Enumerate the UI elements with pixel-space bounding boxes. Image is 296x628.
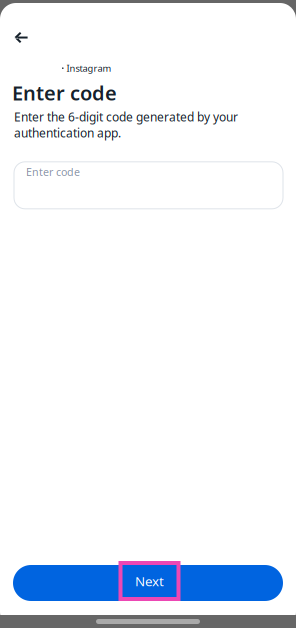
staticText: Enter code: [12, 79, 117, 106]
button[interactable]: Back: [0, 3, 42, 55]
staticText: Enter the 6-digit code generated by your…: [14, 109, 238, 141]
staticText: Instagram: [67, 62, 112, 74]
staticText: Next: [135, 572, 164, 590]
staticText: Enter code: [26, 165, 80, 179]
button[interactable]: Next: [13, 565, 283, 601]
